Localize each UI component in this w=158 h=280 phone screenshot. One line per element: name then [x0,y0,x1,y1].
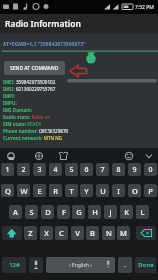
staticText: M [120,228,127,238]
staticText: Done [138,261,154,269]
button[interactable]: Done [135,257,156,273]
button[interactable]: 9 [128,163,141,176]
staticText: V [75,228,80,238]
staticText: F [62,207,66,217]
button[interactable]: I [112,184,125,197]
staticText: Q [5,186,11,196]
staticText: Radio state: Radio on [3,114,51,120]
staticText: 3 [37,165,42,175]
staticText: H [92,207,98,217]
staticText: 7:52 PM [135,4,154,11]
staticText: 5 [69,165,74,175]
button[interactable] [0,14,158,34]
staticText: O [132,186,138,196]
staticText: IMPU: [3,100,17,106]
button[interactable] [46,257,115,273]
staticText: 0 [148,165,153,175]
staticText: IMPI: [3,93,16,99]
staticText: SEND AT COMMAND [10,65,59,72]
staticText: J [109,207,112,217]
button[interactable]: 6 [80,163,93,176]
button[interactable]: V [71,226,84,240]
staticText: 1 [5,165,10,175]
staticText: X [44,228,49,238]
button[interactable]: U [96,184,109,197]
button[interactable]: B [86,226,99,240]
staticText: Current network: MTN NG [3,135,63,141]
staticText: IMSI: 621300229755767 [3,86,56,92]
staticText: U [100,186,106,196]
button[interactable]: 8 [112,163,125,176]
staticText: A [13,207,18,217]
button[interactable]: P [144,184,157,197]
staticText: L [140,207,145,217]
staticText: IMS Domain: [3,107,32,113]
button[interactable]: 2 [17,163,30,176]
staticText: . [124,261,126,269]
staticText: AT+EGMR=1,7,"359842673500673" [3,41,86,48]
staticText: P [148,186,153,196]
button[interactable]: 4 [49,163,62,176]
staticText: E [37,186,42,196]
staticText: R [53,186,58,196]
button[interactable]: K [120,205,133,219]
staticText: 12# [9,261,20,269]
button[interactable]: X [40,226,53,240]
button[interactable]: C [55,226,68,240]
staticText: C [59,228,64,238]
button[interactable]: G [72,205,85,219]
button[interactable]: A [9,205,22,219]
button[interactable]: T [65,184,78,197]
button[interactable]: H [88,205,101,219]
staticText: N [106,228,112,238]
button[interactable]: Z [24,226,37,240]
staticText: Z [28,228,33,238]
button[interactable]: 3 [33,163,46,176]
button[interactable]: S [25,205,38,219]
button[interactable]: R [49,184,62,197]
button[interactable]: 0 [144,163,157,176]
staticText: SIM state: READY [3,121,42,127]
staticText: T [69,186,74,196]
staticText: 4 [53,165,58,175]
button[interactable]: D [41,205,54,219]
button[interactable]: O [128,184,141,197]
button[interactable]: Q [1,184,14,197]
staticText: 8 [116,165,121,175]
staticText: Y [84,186,89,196]
staticText: K [124,207,129,217]
staticText: 2 [21,165,26,175]
button[interactable]: 7 [96,163,109,176]
button[interactable]: N [102,226,115,240]
staticText: I [117,186,120,196]
staticText: D [45,207,51,217]
button[interactable]: 1 [1,163,14,176]
staticText: W [20,186,28,196]
button[interactable] [136,226,156,240]
button[interactable]: W [17,184,30,197]
staticText: G [76,207,82,217]
button[interactable]: 5 [65,163,78,176]
button[interactable]: E [33,184,46,197]
button[interactable] [2,226,22,240]
button[interactable]: 12# [2,257,26,273]
staticText: S [29,207,34,217]
staticText: 9 [132,165,137,175]
staticText: 6 [84,165,89,175]
button[interactable]: J [104,205,117,219]
button[interactable]: Y [80,184,93,197]
button[interactable]: . [118,257,132,273]
button[interactable] [29,257,43,273]
staticText: IMEI: 359842673500102 [3,79,56,85]
staticText: ‹ English › [69,262,92,269]
staticText: Phone number: 08136329870 [3,128,69,134]
staticText: Radio Information [5,18,81,30]
staticText: 7 [100,165,105,175]
button[interactable]: M [117,226,130,240]
button[interactable]: L [136,205,149,219]
button[interactable]: F [57,205,70,219]
button[interactable]: SEND AT COMMAND [4,61,65,75]
staticText: B [90,228,95,238]
